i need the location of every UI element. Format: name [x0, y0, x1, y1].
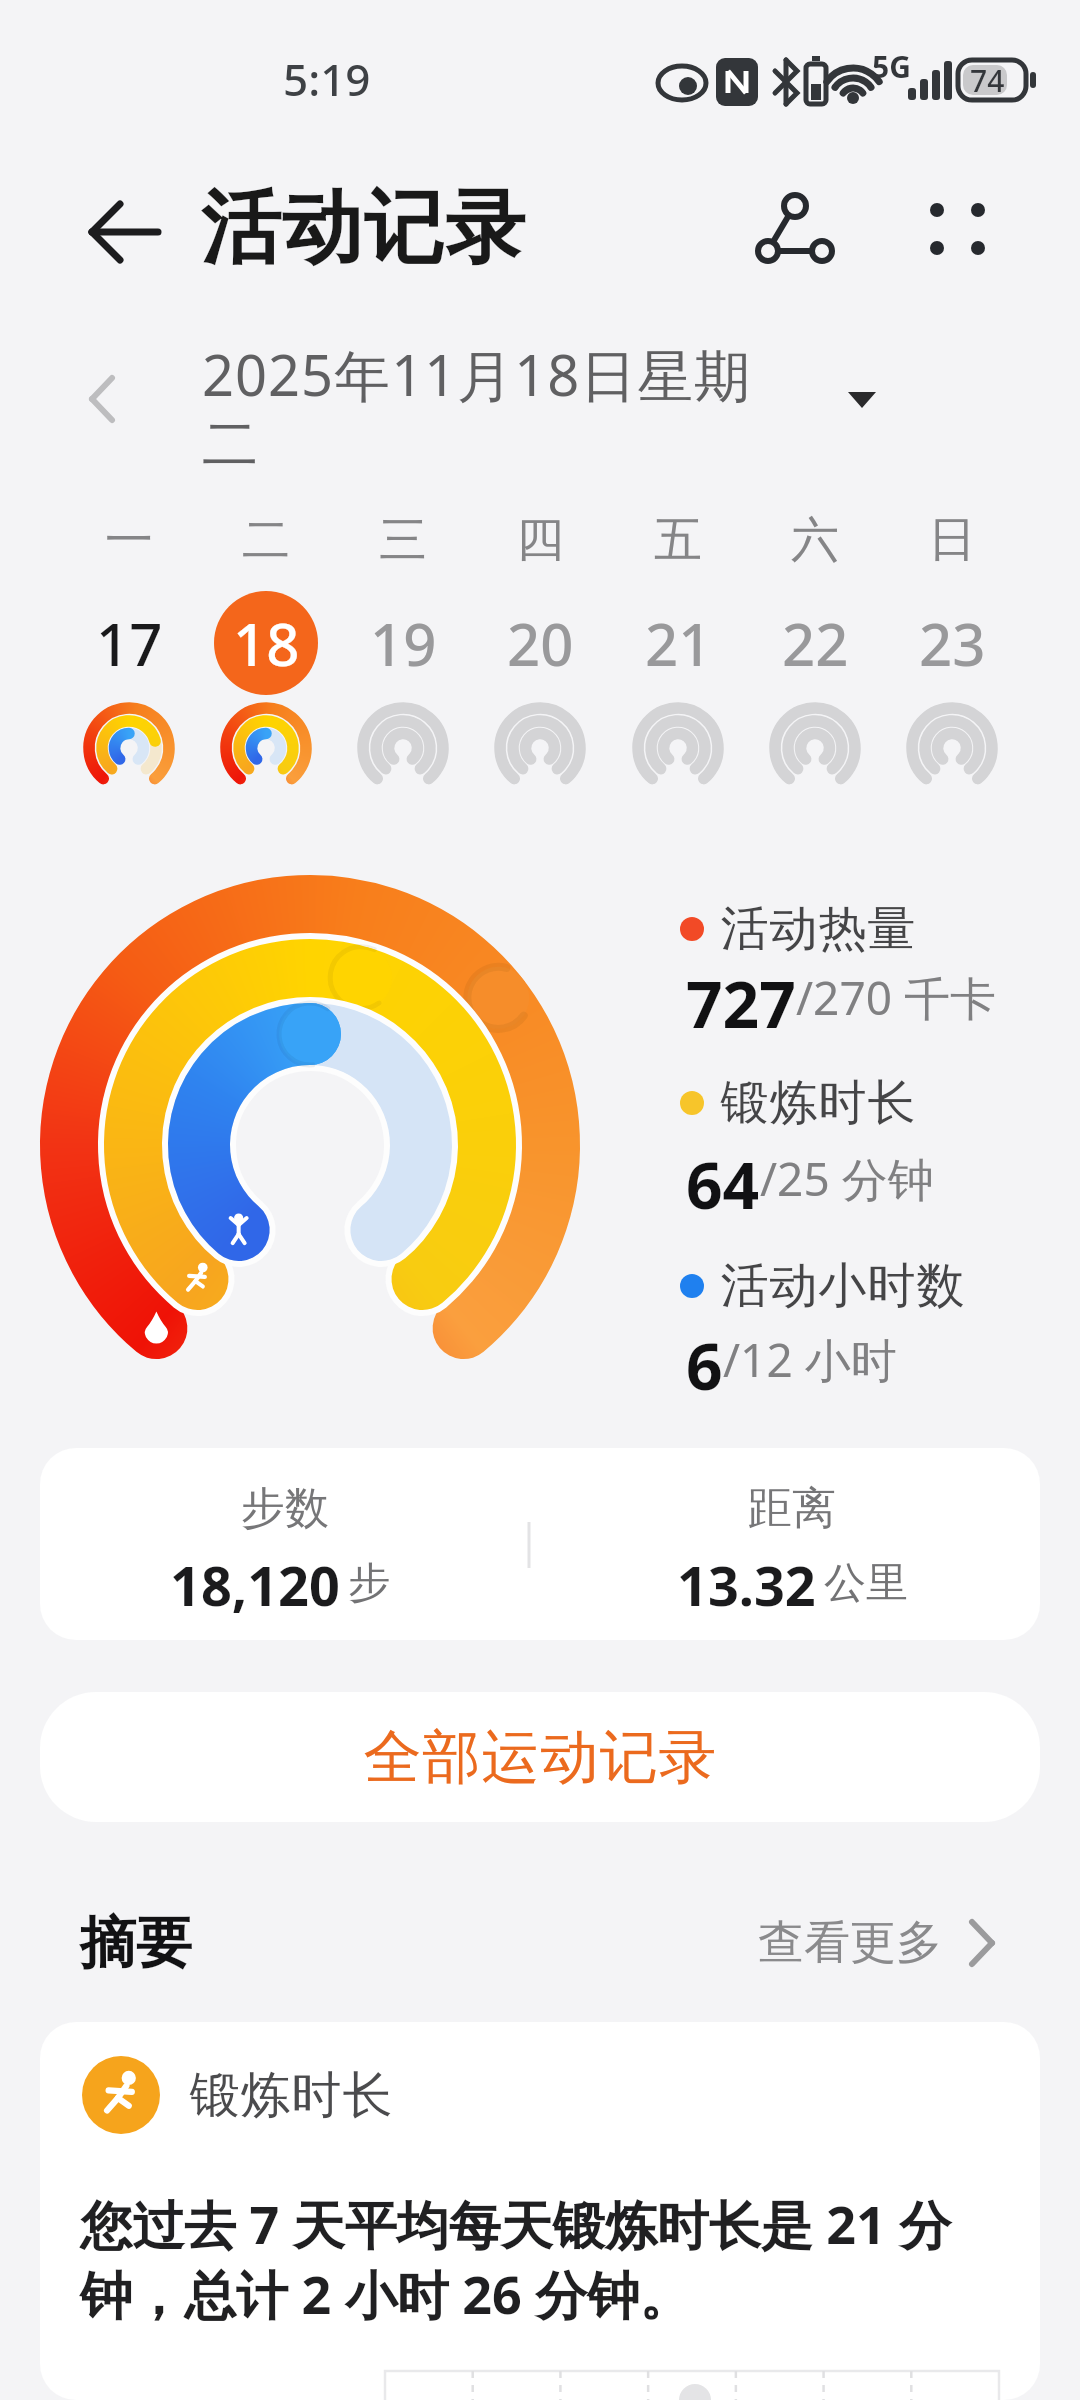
staticText: 五: [654, 510, 702, 570]
staticText: 5G: [872, 46, 911, 86]
button[interactable]: [180, 330, 890, 470]
staticText: 六: [791, 510, 839, 570]
button[interactable]: [40, 1448, 1040, 1640]
staticText: 727: [686, 960, 796, 1034]
staticText: 您过去 7 天平均每天锻炼时长是 21 分 钟，总计 2 小时 26 分钟。: [80, 2188, 952, 2330]
button[interactable]: 18: [214, 591, 318, 695]
staticText: 一: [105, 510, 153, 570]
button[interactable]: [70, 190, 170, 280]
staticText: 6: [686, 1322, 723, 1396]
staticText: 20: [507, 604, 574, 683]
staticText: 二: [242, 510, 290, 570]
staticText: 18: [233, 604, 300, 683]
button[interactable]: 查看更多: [758, 1903, 1018, 1983]
staticText: 74: [970, 60, 1005, 101]
staticText: 22: [782, 604, 849, 683]
staticText: 锻炼时长: [720, 1073, 916, 1133]
button[interactable]: [745, 185, 845, 280]
button[interactable]: [912, 185, 1012, 280]
staticText: 四: [516, 510, 564, 570]
staticText: 2025年11月18日星期 二: [202, 336, 752, 480]
staticText: 23: [919, 604, 986, 683]
staticText: /25 分钟: [760, 1147, 934, 1210]
staticText: 活动热量: [720, 899, 916, 959]
staticText: 锻炼时长: [189, 2064, 393, 2127]
staticText: 步: [348, 1557, 390, 1610]
staticText: 18,120: [170, 1548, 340, 1618]
staticText: 21: [645, 604, 712, 683]
staticText: 13.32: [677, 1548, 816, 1618]
staticText: /12 小时: [723, 1328, 897, 1391]
staticText: 公里: [824, 1557, 908, 1610]
staticText: 查看更多: [758, 1914, 942, 1972]
button[interactable]: [40, 1692, 1040, 1822]
staticText: 三: [379, 510, 427, 570]
staticText: 活动记录: [200, 178, 526, 279]
staticText: 全部运动记录: [363, 1721, 717, 1794]
staticText: 5:19: [283, 49, 371, 109]
staticText: 距离: [748, 1481, 836, 1536]
staticText: /270 千卡: [796, 966, 997, 1029]
staticText: 步数: [241, 1481, 329, 1536]
staticText: 19: [370, 604, 437, 683]
staticText: 64: [686, 1141, 760, 1215]
staticText: 17: [96, 604, 163, 683]
staticText: 活动小时数: [720, 1256, 965, 1316]
staticText: 日: [928, 510, 976, 570]
staticText: 摘要: [80, 1908, 192, 1979]
button[interactable]: [40, 2022, 1040, 2400]
